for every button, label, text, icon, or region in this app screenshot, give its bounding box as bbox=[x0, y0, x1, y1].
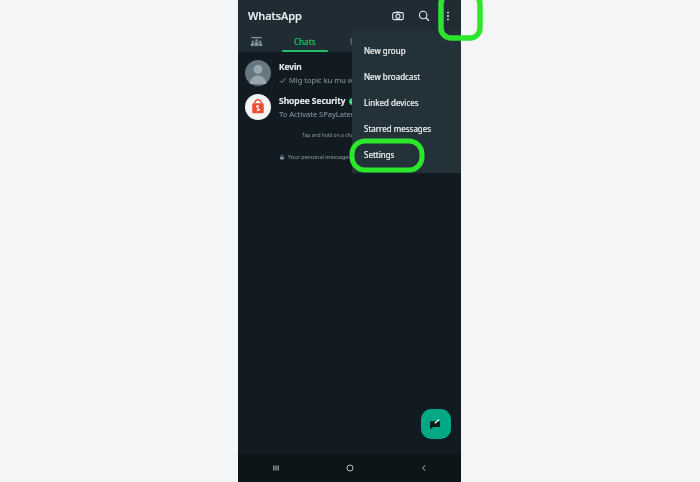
staticText: New group bbox=[364, 45, 406, 56]
staticText: Settings bbox=[364, 149, 395, 160]
button[interactable]: New broadcast bbox=[352, 63, 461, 89]
button[interactable]: Starred messages bbox=[352, 115, 461, 141]
button[interactable]: Shopee Security bbox=[238, 90, 461, 124]
staticText: To Activate SPayLater bbox=[279, 109, 354, 119]
staticText: New broadcast bbox=[364, 71, 421, 82]
staticText: Linked devices bbox=[364, 97, 419, 108]
button[interactable]: Linked devices bbox=[352, 89, 461, 115]
button[interactable]: Back bbox=[387, 454, 461, 482]
staticText: Kevin bbox=[279, 61, 302, 73]
staticText: Mig topic ku mu w bbox=[289, 75, 354, 85]
staticText: Shopee Security bbox=[279, 95, 346, 107]
button[interactable]: Settings bbox=[352, 141, 461, 167]
button[interactable]: Camera bbox=[388, 6, 408, 26]
button[interactable]: Communities bbox=[238, 31, 274, 52]
staticText: Tap and hold on a chat for more options bbox=[302, 132, 397, 139]
staticText: Starred messages bbox=[364, 123, 432, 134]
button[interactable]: Home bbox=[313, 454, 387, 482]
button[interactable]: Search bbox=[414, 6, 434, 26]
button[interactable]: Chats bbox=[274, 31, 336, 52]
staticText: WhatsApp bbox=[248, 8, 302, 23]
button[interactable]: More options bbox=[438, 6, 458, 26]
button[interactable]: New chat bbox=[421, 409, 451, 439]
staticText: Chats bbox=[294, 36, 316, 47]
staticText: Updates bbox=[350, 36, 382, 47]
staticText: Your personal messages are bbox=[288, 153, 363, 160]
staticText: end-to-end encrypted bbox=[363, 153, 420, 160]
button[interactable]: New group bbox=[352, 37, 461, 63]
button[interactable]: Updates bbox=[336, 31, 396, 52]
button[interactable]: Kevin bbox=[238, 56, 461, 90]
button[interactable]: Recents bbox=[238, 454, 313, 482]
